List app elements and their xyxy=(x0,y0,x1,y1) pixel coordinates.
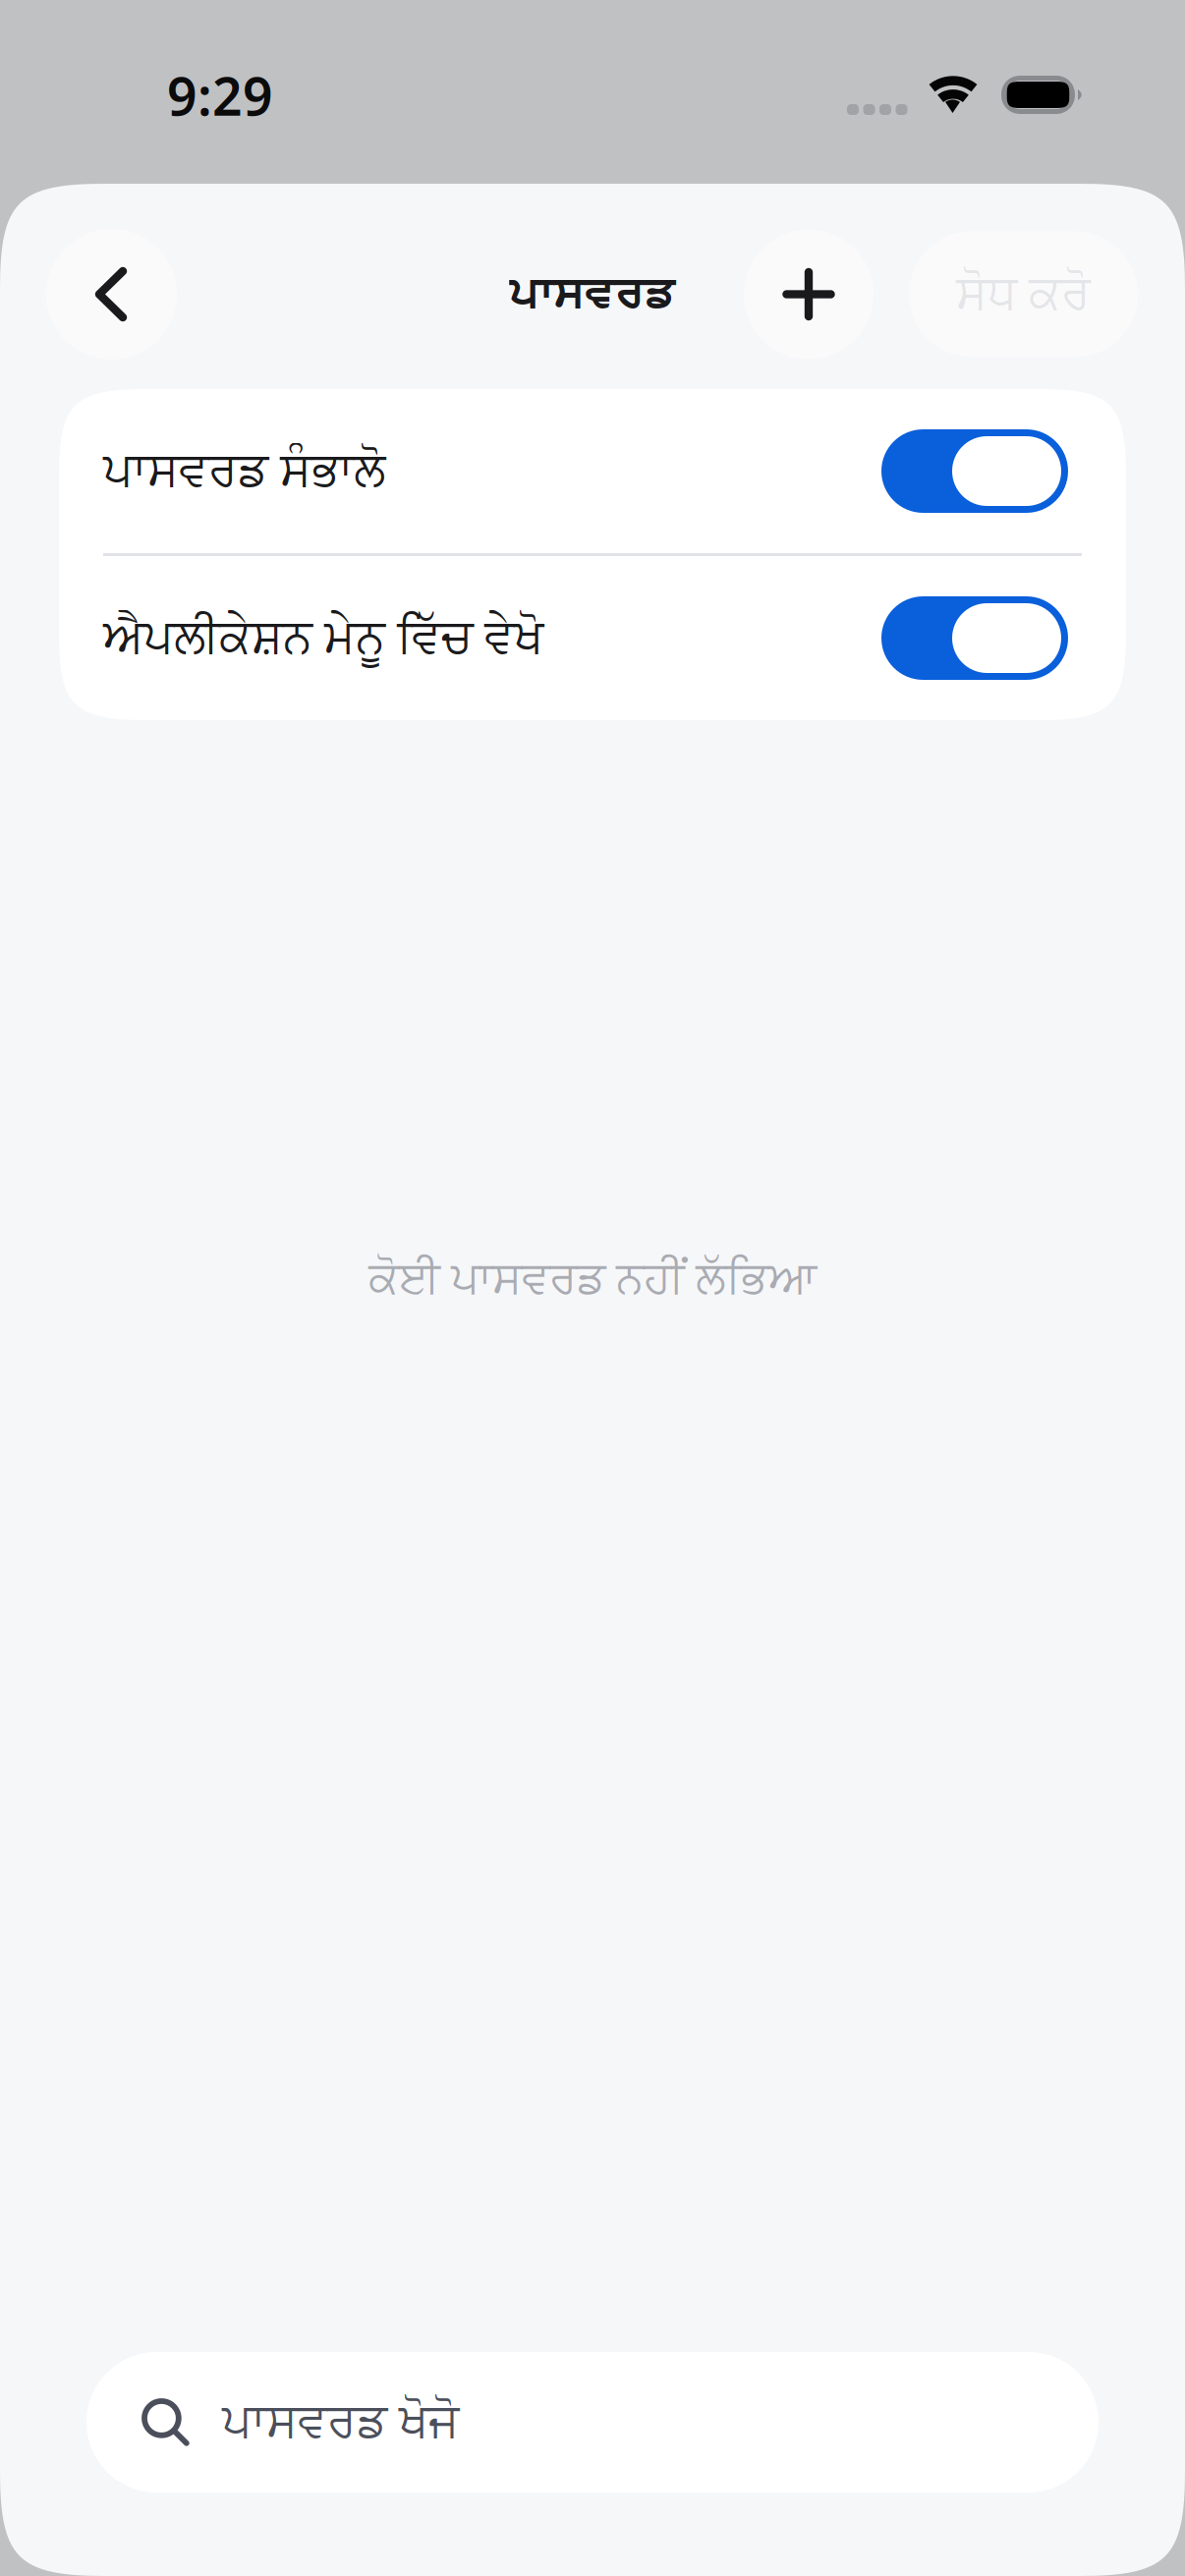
staticText: 9:29 xyxy=(167,61,273,130)
staticText: ਸੋਧ ਕਰੋ xyxy=(956,271,1091,317)
button[interactable]: Add password xyxy=(744,229,874,359)
button[interactable]: Back xyxy=(46,229,177,360)
button[interactable]: ਪਾਸਵਰਡ ਸੰਭਾਲੋ xyxy=(59,389,1126,553)
staticText: ਕੋਈ ਪਾਸਵਰਡ ਨਹੀਂ ਲੱਭਿਆ xyxy=(368,1258,817,1301)
staticText: ਪਾਸਵਰਡ xyxy=(509,273,676,316)
staticText: ਪਾਸਵਰਡ ਸੰਭਾਲੋ xyxy=(103,448,385,494)
button[interactable]: ਸੋਧ ਕਰੋ xyxy=(909,231,1138,357)
button[interactable]: ਪਾਸਵਰਡ ਖੋਜੋ xyxy=(86,2352,1099,2492)
staticText: ਪਾਸਵਰਡ ਖੋਜੋ xyxy=(222,2399,459,2445)
staticText: ਐਪਲੀਕੇਸ਼ਨ ਮੇਨੂ ਵਿੱਚ ਵੇਖੋ xyxy=(103,615,543,661)
button[interactable]: ਐਪਲੀਕੇਸ਼ਨ ਮੇਨੂ ਵਿੱਚ ਵੇਖੋ xyxy=(59,556,1126,720)
